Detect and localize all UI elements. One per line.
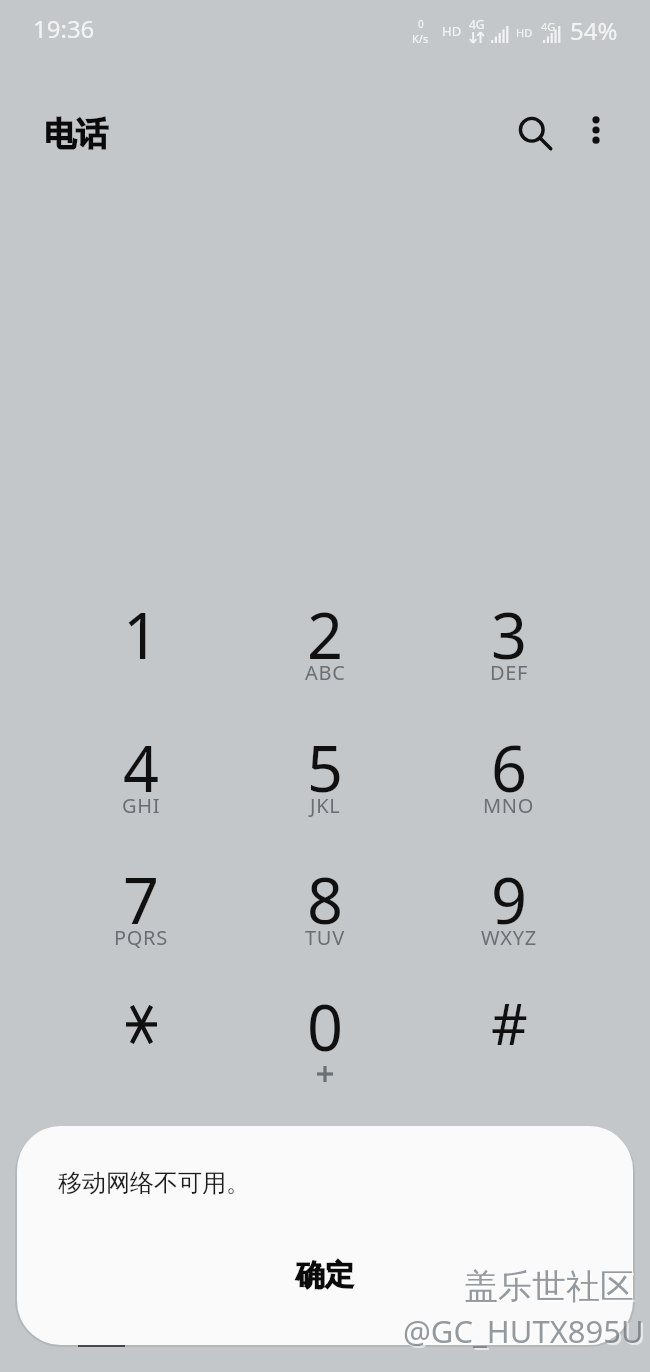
staticText: K/s	[412, 31, 429, 46]
staticText: 移动网络不可用。	[58, 1168, 250, 1198]
button[interactable]: 8	[237, 837, 413, 965]
staticText: HD	[442, 22, 462, 40]
staticText: DEF	[490, 659, 529, 686]
button[interactable]	[53, 964, 229, 1092]
button[interactable]: 4	[53, 705, 229, 833]
button[interactable]: More options	[572, 106, 620, 154]
staticText: HD	[516, 25, 533, 40]
staticText: 4	[123, 725, 160, 811]
staticText: 1	[123, 592, 160, 678]
staticText: @GC_HUTX895U	[403, 1310, 644, 1352]
staticText: 盖乐世社区	[466, 1267, 636, 1310]
staticText: 4G	[469, 16, 485, 32]
button[interactable]: 5	[237, 705, 413, 833]
staticText: PQRS	[114, 924, 168, 951]
staticText: 54%	[570, 14, 618, 47]
staticText: 19:36	[33, 12, 95, 45]
button[interactable]: 6	[421, 705, 597, 833]
staticText: WXYZ	[481, 924, 537, 951]
staticText: TUV	[305, 924, 345, 951]
staticText: 0	[307, 984, 344, 1070]
staticText: 0	[418, 17, 424, 31]
staticText: 6	[491, 725, 528, 811]
button[interactable]: 3	[421, 572, 597, 700]
staticText: 5	[307, 725, 344, 811]
staticText: ABC	[305, 659, 346, 686]
staticText: 3	[491, 592, 528, 678]
button[interactable]: 2	[237, 572, 413, 700]
staticText: 电话	[44, 114, 108, 154]
staticText: 9	[491, 857, 528, 943]
button[interactable]: #	[421, 964, 597, 1092]
staticText: 7	[123, 857, 160, 943]
staticText: @GC_HUTX895U	[405, 1312, 646, 1354]
staticText: 2	[307, 592, 344, 678]
button[interactable]: 0	[237, 964, 413, 1092]
staticText: 4G	[541, 19, 556, 34]
staticText: 盖乐世社区	[464, 1265, 634, 1308]
button[interactable]: 9	[421, 837, 597, 965]
button[interactable]: 确定	[17, 1239, 633, 1311]
staticText: MNO	[483, 792, 535, 819]
staticText: 8	[307, 857, 344, 943]
button[interactable]: 电话	[44, 114, 108, 154]
staticText: 确定	[296, 1257, 354, 1294]
button[interactable]: Search	[508, 106, 562, 160]
staticText: #	[491, 984, 528, 1062]
staticText: JKL	[310, 792, 341, 819]
button[interactable]: 1	[53, 572, 229, 700]
staticText: GHI	[122, 792, 161, 819]
button[interactable]: 7	[53, 837, 229, 965]
